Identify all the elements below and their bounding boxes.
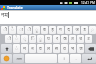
staticText: र bbox=[56, 36, 58, 42]
button[interactable]: ा bbox=[17, 26, 24, 34]
staticText: ण bbox=[79, 46, 83, 52]
staticText: Translate bbox=[7, 5, 23, 10]
staticText: ल bbox=[47, 46, 50, 52]
button[interactable]: ै bbox=[9, 26, 16, 34]
button[interactable]: द bbox=[65, 26, 72, 34]
button[interactable]: भ bbox=[69, 44, 76, 53]
button[interactable]: ण bbox=[77, 44, 84, 53]
staticText: ् bbox=[23, 36, 26, 42]
button[interactable]: ं bbox=[13, 44, 20, 53]
button[interactable]: Emoji bbox=[1, 54, 12, 63]
staticText: ं bbox=[15, 46, 18, 52]
staticText: म bbox=[23, 46, 26, 52]
button[interactable]: म bbox=[21, 44, 28, 53]
button[interactable]: अआ bbox=[13, 54, 24, 63]
button[interactable]: Backspace bbox=[85, 44, 96, 53]
button[interactable]: ौ bbox=[1, 26, 8, 34]
button[interactable]: ू bbox=[33, 26, 40, 34]
staticText: । bbox=[63, 56, 65, 62]
staticText: भ bbox=[71, 46, 74, 52]
button[interactable]: र bbox=[53, 35, 60, 43]
staticText: . bbox=[75, 56, 77, 62]
button[interactable]: व bbox=[37, 44, 44, 53]
button[interactable]: स bbox=[53, 44, 60, 53]
staticText: ि bbox=[31, 36, 35, 42]
staticText: ो bbox=[7, 36, 11, 42]
staticText: ौ bbox=[3, 27, 7, 33]
button[interactable]: । bbox=[58, 54, 69, 63]
button[interactable]: ि bbox=[29, 35, 36, 43]
staticText: 12:41 PM bbox=[81, 1, 95, 5]
staticText: स bbox=[55, 46, 58, 52]
button[interactable]: ो bbox=[5, 35, 12, 43]
staticText: द bbox=[67, 27, 70, 33]
staticText: ी bbox=[27, 27, 31, 33]
staticText: ड bbox=[83, 27, 86, 33]
button[interactable]: त bbox=[69, 35, 76, 43]
button[interactable]: क bbox=[61, 35, 68, 43]
staticText: य bbox=[63, 46, 66, 52]
staticText: ह bbox=[51, 27, 54, 33]
staticText: ज bbox=[75, 27, 79, 33]
button[interactable]: Shift bbox=[1, 44, 12, 53]
button[interactable]: . bbox=[70, 54, 81, 63]
staticText: क bbox=[63, 36, 67, 42]
staticText: अआ bbox=[16, 57, 22, 61]
button[interactable]: न bbox=[29, 44, 36, 53]
staticText: ब bbox=[43, 27, 46, 33]
button[interactable]: ् bbox=[21, 35, 28, 43]
staticText: त bbox=[71, 36, 74, 42]
staticText: ग bbox=[59, 27, 62, 33]
button[interactable]: ह bbox=[49, 26, 56, 34]
button[interactable]: ़ bbox=[89, 26, 96, 34]
button[interactable]: ब bbox=[41, 26, 48, 34]
staticText: ा bbox=[19, 27, 23, 33]
button[interactable]: ग bbox=[57, 26, 64, 34]
staticText: ै bbox=[11, 27, 14, 33]
button[interactable]: ट bbox=[85, 35, 92, 43]
button[interactable]: Space bbox=[25, 54, 57, 63]
staticText: ू bbox=[35, 27, 38, 33]
button[interactable]: ज bbox=[73, 26, 80, 34]
button[interactable]: य bbox=[61, 44, 68, 53]
button[interactable]: प bbox=[45, 35, 52, 43]
staticText: प bbox=[47, 36, 50, 42]
button[interactable]: ु bbox=[37, 35, 44, 43]
staticText: े bbox=[15, 36, 18, 42]
staticText: नम bbox=[1, 11, 8, 19]
staticText: ु bbox=[39, 36, 42, 42]
button[interactable]: ड bbox=[81, 26, 88, 34]
staticText: व bbox=[39, 46, 42, 52]
staticText: न bbox=[31, 46, 34, 52]
button[interactable]: Enter bbox=[82, 54, 96, 63]
staticText: ट bbox=[87, 36, 90, 42]
staticText: ़ bbox=[91, 27, 94, 33]
button[interactable]: च bbox=[77, 35, 84, 43]
button[interactable]: ल bbox=[45, 44, 52, 53]
button[interactable]: ी bbox=[25, 26, 32, 34]
staticText: च bbox=[79, 36, 82, 42]
button[interactable]: े bbox=[13, 35, 20, 43]
